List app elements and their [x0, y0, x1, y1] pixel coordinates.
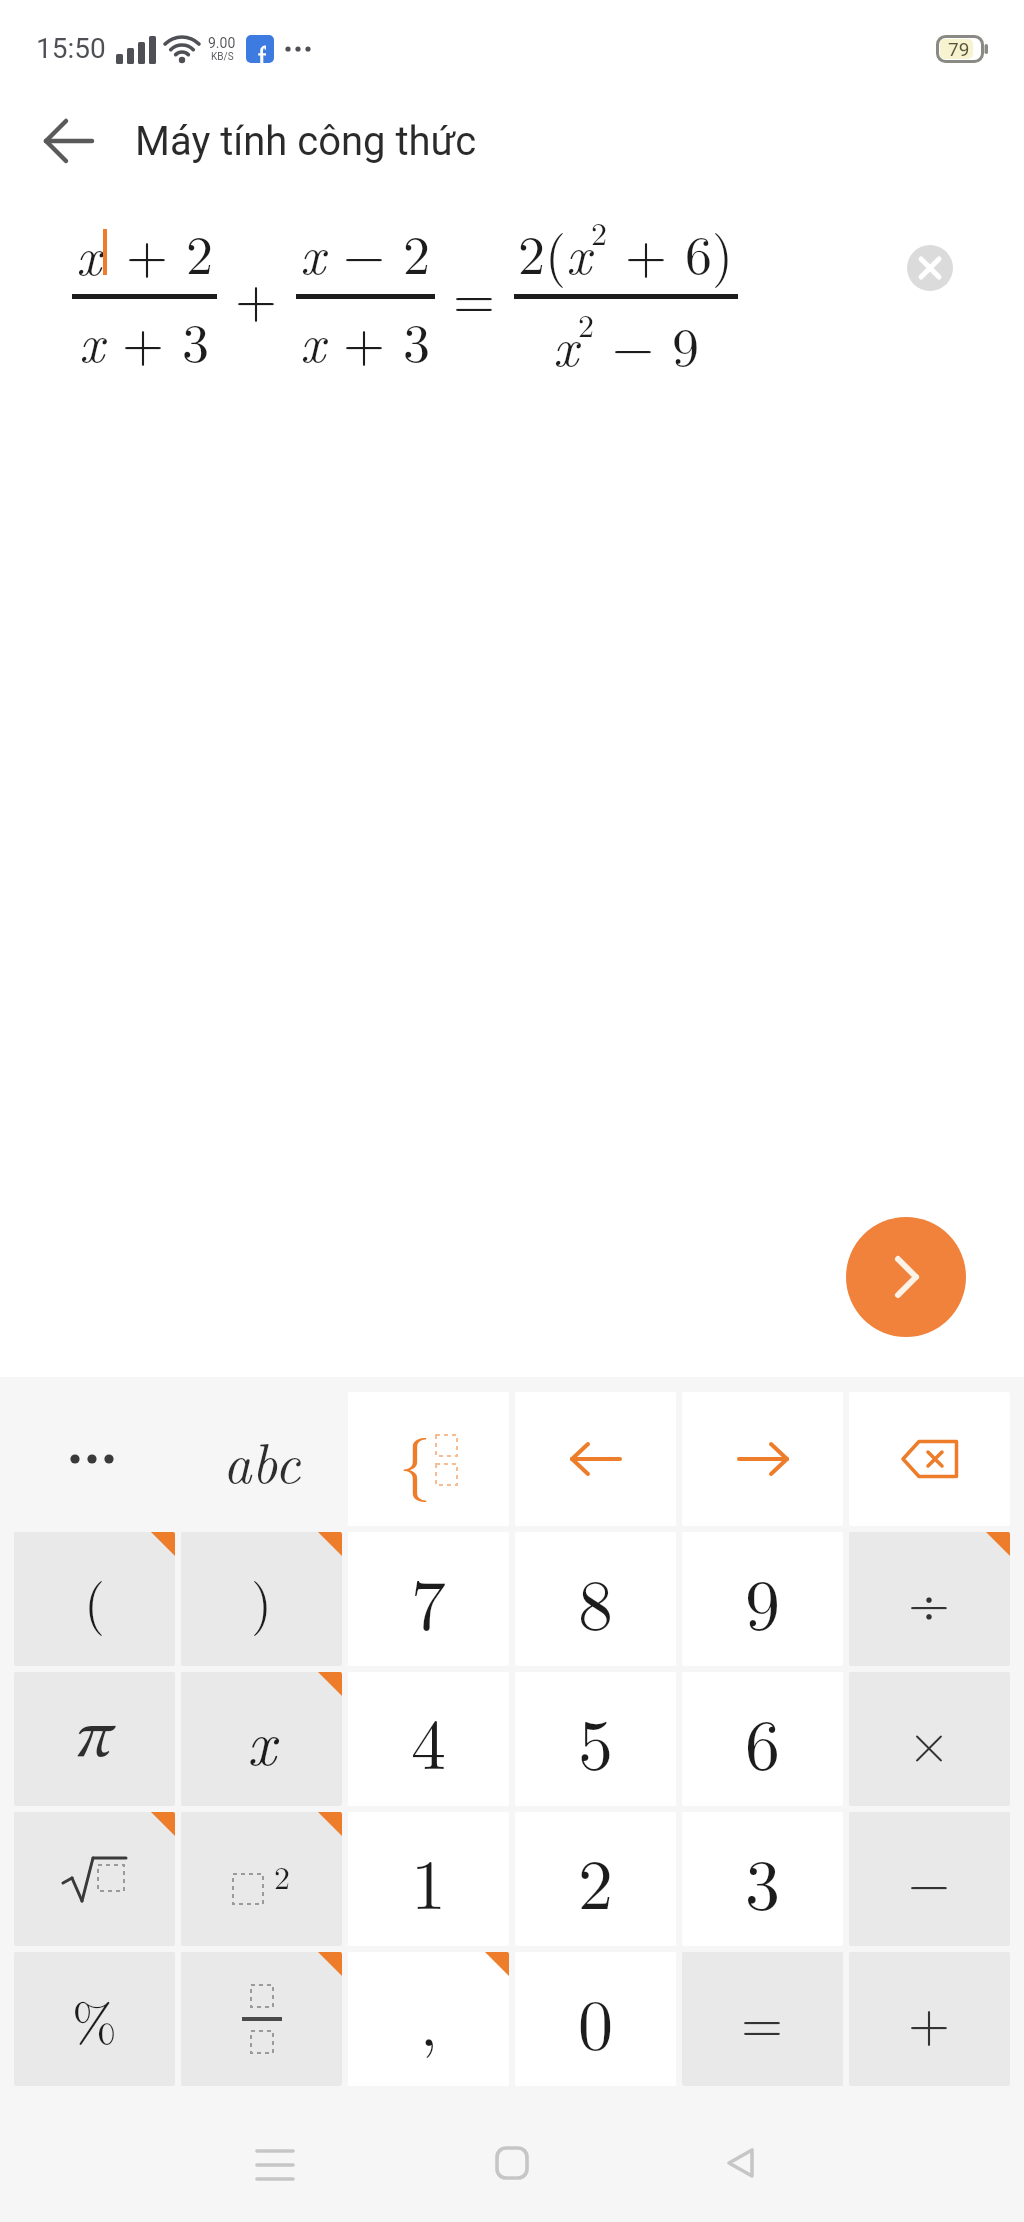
staticText: =: [741, 1981, 784, 2058]
staticText: x + 3: [79, 301, 210, 378]
staticText: 6: [745, 1690, 780, 1789]
staticText: 79: [948, 38, 970, 60]
button[interactable]: [257, 2147, 293, 2183]
button[interactable]: (: [14, 1532, 175, 1666]
button[interactable]: 8: [515, 1532, 676, 1666]
staticText: ,: [420, 1974, 438, 2065]
button[interactable]: [495, 2146, 529, 2180]
button[interactable]: ,: [348, 1952, 509, 2086]
button[interactable]: 9: [682, 1532, 843, 1666]
button[interactable]: =: [682, 1952, 843, 2086]
staticText: 3: [745, 1830, 780, 1929]
staticText: {: [399, 1414, 431, 1505]
staticText: ÷: [908, 1561, 951, 1638]
staticText: 2: [578, 1830, 613, 1929]
button[interactable]: [726, 2147, 755, 2179]
button[interactable]: 6: [682, 1672, 843, 1806]
staticText: x2 − 9: [553, 301, 700, 382]
button[interactable]: [181, 1952, 342, 2086]
button[interactable]: [907, 245, 953, 291]
button[interactable]: 2: [181, 1812, 342, 1946]
button[interactable]: 2: [515, 1812, 676, 1946]
staticText: x: [247, 1695, 276, 1783]
staticText: +: [908, 1981, 951, 2058]
button[interactable]: {: [348, 1392, 509, 1526]
staticText: +: [235, 257, 278, 334]
button[interactable]: [14, 1812, 175, 1946]
staticText: x: [76, 214, 102, 290]
button[interactable]: [14, 1392, 175, 1526]
staticText: KB/S: [211, 51, 234, 63]
staticText: x + 3: [300, 301, 431, 378]
staticText: Máy tính công thức: [135, 118, 477, 165]
staticText: %: [72, 1981, 117, 2058]
staticText: (: [84, 1561, 106, 1638]
button[interactable]: [849, 1392, 1010, 1526]
button[interactable]: ): [181, 1532, 342, 1666]
button[interactable]: [682, 1392, 843, 1526]
button[interactable]: [515, 1392, 676, 1526]
button[interactable]: 1: [348, 1812, 509, 1946]
button[interactable]: −: [849, 1812, 1010, 1946]
staticText: 2(x2 + 6): [518, 209, 734, 290]
button[interactable]: x: [181, 1672, 342, 1806]
staticText: π: [76, 1707, 114, 1771]
button[interactable]: 3: [682, 1812, 843, 1946]
staticText: −: [908, 1841, 951, 1918]
button[interactable]: abc: [181, 1392, 342, 1526]
staticText: 8: [578, 1550, 613, 1649]
button[interactable]: π: [14, 1672, 175, 1806]
staticText: 1: [411, 1830, 446, 1929]
staticText: ×: [908, 1701, 951, 1778]
button[interactable]: ×: [849, 1672, 1010, 1806]
staticText: 9: [745, 1550, 780, 1649]
staticText: abc: [223, 1420, 301, 1499]
staticText: 0: [578, 1970, 613, 2069]
staticText: 5: [578, 1690, 613, 1789]
button[interactable]: +: [849, 1952, 1010, 2086]
staticText: + 2: [108, 213, 213, 290]
button[interactable]: ÷: [849, 1532, 1010, 1666]
button[interactable]: [846, 1217, 966, 1337]
button[interactable]: 4: [348, 1672, 509, 1806]
staticText: =: [453, 257, 496, 334]
staticText: 4: [411, 1690, 446, 1789]
staticText: 7: [411, 1550, 446, 1649]
staticText: 9.00: [208, 35, 236, 51]
staticText: 15:50: [36, 32, 106, 65]
staticText: f: [258, 36, 266, 63]
button[interactable]: [43, 115, 95, 167]
staticText: 2: [274, 1853, 291, 1898]
button[interactable]: %: [14, 1952, 175, 2086]
button[interactable]: 7: [348, 1532, 509, 1666]
staticText: x − 2: [300, 213, 431, 290]
button[interactable]: 5: [515, 1672, 676, 1806]
button[interactable]: 0: [515, 1952, 676, 2086]
staticText: ): [251, 1561, 273, 1638]
